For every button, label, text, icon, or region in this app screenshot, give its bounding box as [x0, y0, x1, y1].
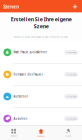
staticText: Ausruhen	[13, 117, 27, 120]
staticText: Hinzufügen	[66, 117, 77, 120]
button[interactable]: Add Scene	[71, 2, 78, 10]
staticText: Erstellen Sie Ihre eigene Szene	[10, 16, 71, 30]
staticText: Aufstehen	[13, 95, 28, 98]
button[interactable]: Räume	[0, 129, 27, 137]
button[interactable]: Zuhause	[27, 129, 55, 137]
staticText: Passen Sie diese Vorschläge an oder erst…	[13, 35, 68, 38]
button[interactable]: Verlassen des Hauses	[0, 63, 82, 85]
staticText: Status	[65, 134, 71, 137]
staticText: Hinzufügen	[66, 51, 77, 54]
button[interactable]: Aufstehen	[0, 86, 82, 107]
staticText: Nach Hause zurückkehren	[13, 50, 47, 54]
button[interactable]: Status	[55, 129, 82, 137]
staticText: Hinzufügen	[66, 95, 77, 98]
staticText: Zuhause	[37, 134, 44, 137]
button[interactable]: Nach Hause zurückkehren	[0, 41, 82, 63]
staticText: Szenen	[3, 4, 19, 10]
button[interactable]: Ausruhen	[0, 108, 82, 129]
staticText: Räume	[11, 134, 17, 137]
staticText: Hinzufügen	[66, 73, 77, 76]
staticText: Verlassen des Hauses	[13, 73, 42, 76]
